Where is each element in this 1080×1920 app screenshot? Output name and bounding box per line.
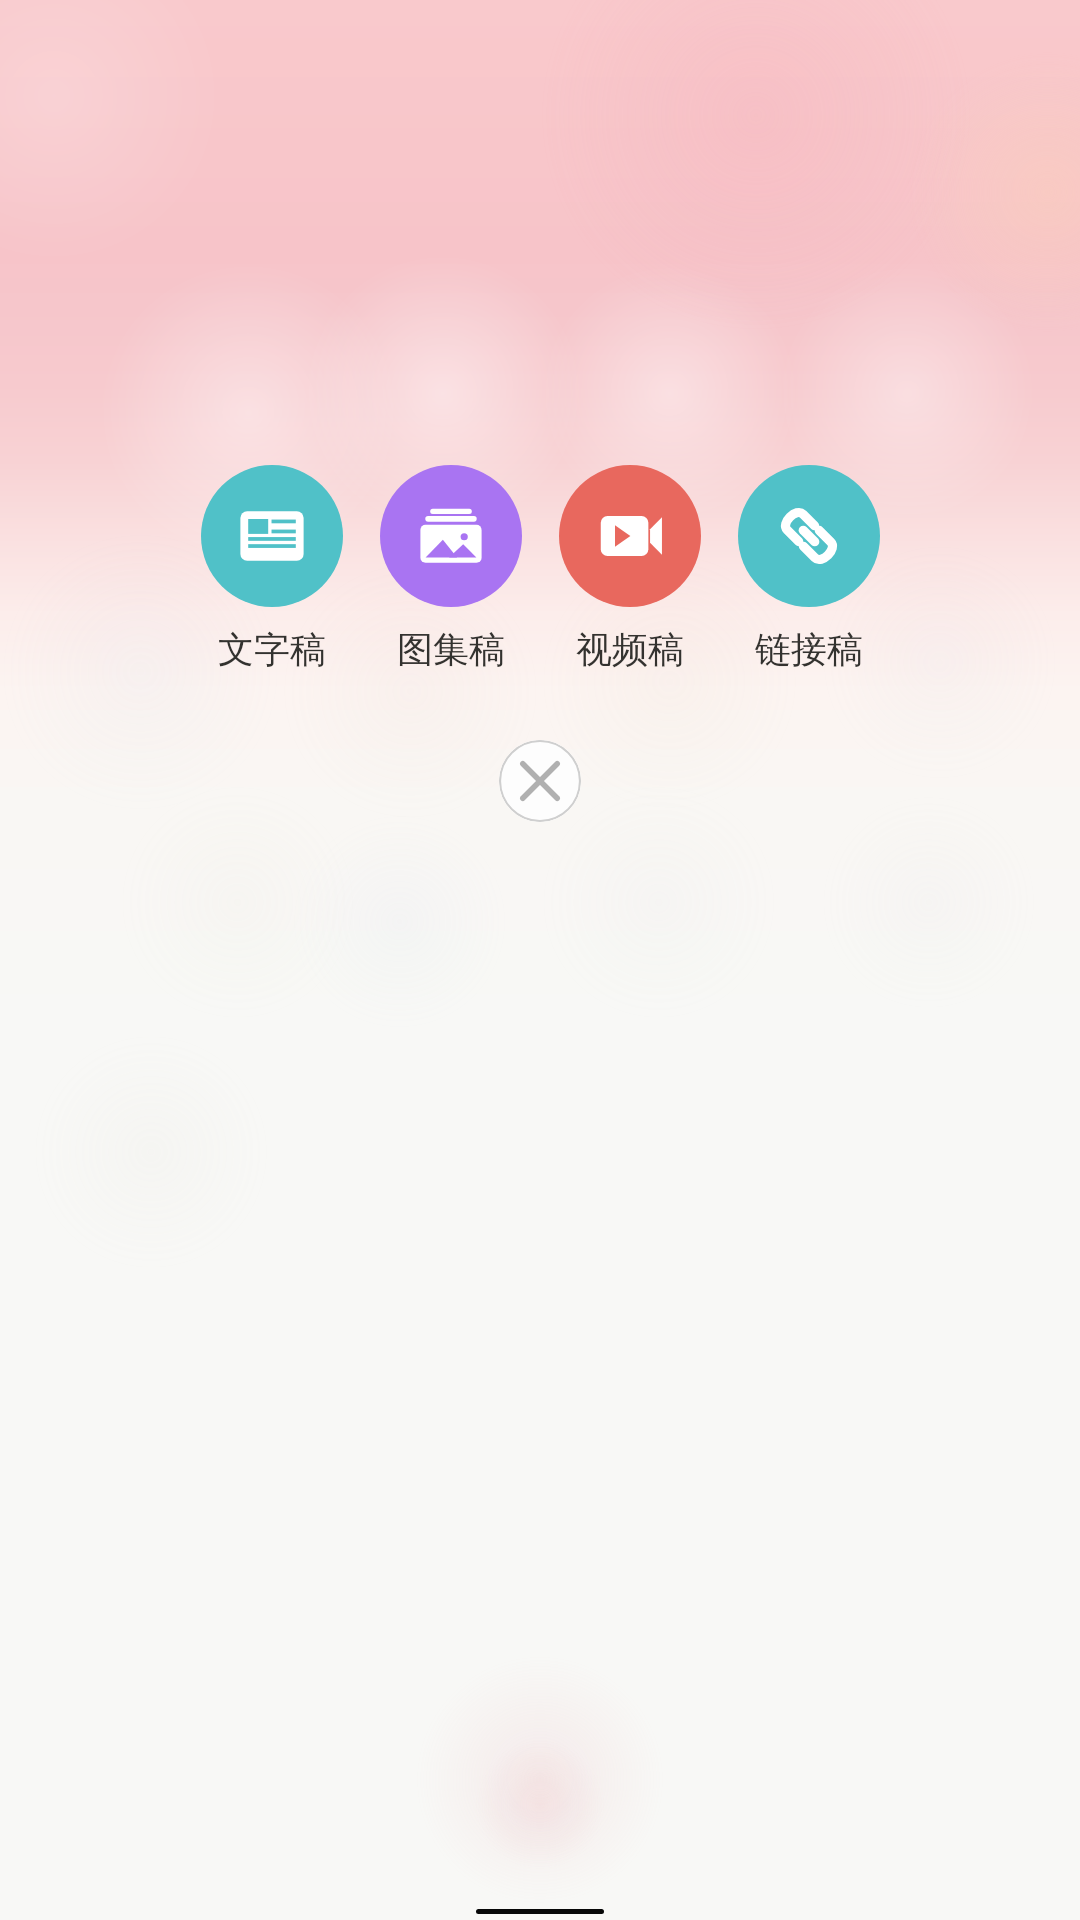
- button[interactable]: 文字稿: [195, 465, 349, 672]
- staticText: 视频稿: [576, 627, 684, 672]
- staticText: 图集稿: [397, 627, 505, 672]
- staticText: 文字稿: [218, 627, 326, 672]
- staticText: 链接稿: [755, 627, 863, 672]
- button[interactable]: 图集稿: [374, 465, 528, 672]
- button[interactable]: Close: [499, 740, 581, 822]
- button[interactable]: 链接稿: [732, 465, 886, 672]
- button[interactable]: 视频稿: [553, 465, 707, 672]
